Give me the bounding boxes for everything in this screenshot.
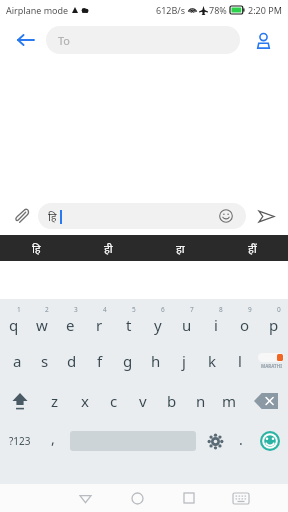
staticText: 2:20 PM [248, 4, 282, 16]
button[interactable]: 2 [28, 303, 56, 341]
button[interactable]: 6 [143, 303, 172, 341]
button[interactable]: Attach [8, 203, 34, 229]
staticText: i [214, 315, 218, 335]
staticText: 0 [277, 305, 281, 314]
button[interactable]: Hide keyboard [215, 484, 267, 512]
button[interactable]: ?123 [0, 421, 40, 461]
button[interactable]: Contacts [248, 25, 278, 55]
staticText: p [269, 315, 279, 335]
staticText: k [208, 351, 217, 371]
button[interactable]: v [128, 381, 157, 421]
button[interactable]: k [198, 341, 226, 381]
staticText: f [97, 351, 103, 371]
staticText: 9 [248, 305, 252, 314]
button[interactable]: Marathi toggle [254, 341, 288, 381]
staticText: y [154, 315, 162, 335]
staticText: v [139, 391, 147, 411]
staticText: z [51, 391, 59, 411]
staticText: . [239, 430, 243, 449]
button[interactable]: l [226, 341, 254, 381]
button[interactable]: s [31, 341, 58, 381]
staticText: 8 [219, 305, 223, 314]
button[interactable]: हि [0, 235, 72, 261]
staticText: MARATHI [261, 363, 282, 369]
staticText: 1 [17, 305, 21, 314]
button[interactable]: j [170, 341, 198, 381]
staticText: q [9, 315, 19, 335]
staticText: t [126, 315, 132, 335]
button[interactable]: z [40, 381, 70, 421]
button[interactable]: f [86, 341, 114, 381]
button[interactable]: हि [38, 203, 246, 229]
staticText: 2 [45, 305, 49, 314]
staticText: 4 [103, 305, 107, 314]
staticText: x [81, 391, 89, 411]
staticText: ही [104, 241, 113, 256]
button[interactable]: Settings [200, 421, 230, 461]
button[interactable]: h [142, 341, 170, 381]
staticText: हि [48, 209, 57, 224]
staticText: हीं [248, 241, 257, 256]
staticText: 612B/s [156, 4, 185, 16]
staticText: 3 [74, 305, 78, 314]
button[interactable]: c [99, 381, 128, 421]
staticText: n [196, 391, 206, 411]
staticText: b [167, 391, 177, 411]
button[interactable]: Emoji keyboard [252, 421, 288, 461]
staticText: w [36, 315, 48, 335]
button[interactable]: 8 [201, 303, 230, 341]
button[interactable]: , [40, 421, 66, 461]
staticText: 7 [190, 305, 194, 314]
staticText: हि [32, 241, 41, 256]
button[interactable]: Recents [163, 484, 215, 512]
button[interactable]: 5 [114, 303, 143, 341]
staticText: o [240, 315, 250, 335]
staticText: 78% [209, 4, 227, 16]
staticText: To [58, 33, 71, 48]
staticText: h [151, 351, 161, 371]
button[interactable]: b [157, 381, 186, 421]
button[interactable]: Back [59, 484, 111, 512]
button[interactable]: 1 [0, 303, 28, 341]
staticText: u [182, 315, 192, 335]
staticText: हा [176, 241, 185, 256]
button[interactable]: Emoji [216, 206, 236, 226]
button[interactable]: Send [252, 202, 280, 230]
staticText: Airplane mode [6, 4, 69, 16]
button[interactable]: ही [72, 235, 144, 261]
staticText: c [110, 391, 118, 411]
staticText: e [66, 315, 75, 335]
button[interactable]: Shift [0, 381, 40, 421]
button[interactable]: x [70, 381, 99, 421]
button[interactable]: n [186, 381, 215, 421]
button[interactable]: 0 [259, 303, 288, 341]
staticText: 5 [132, 305, 136, 314]
button[interactable]: Home [111, 484, 163, 512]
button[interactable]: Backspace [244, 381, 288, 421]
button[interactable]: हीं [216, 235, 288, 261]
staticText: r [96, 315, 103, 335]
staticText: ?123 [9, 434, 31, 448]
button[interactable]: . [230, 421, 252, 461]
button[interactable]: Back [10, 25, 40, 55]
button[interactable]: 3 [56, 303, 85, 341]
staticText: g [123, 351, 133, 371]
staticText: 6 [161, 305, 165, 314]
button[interactable]: 7 [172, 303, 201, 341]
button[interactable]: हा [144, 235, 216, 261]
button[interactable]: a [4, 341, 31, 381]
button[interactable]: 4 [85, 303, 114, 341]
button[interactable]: g [114, 341, 142, 381]
staticText: a [13, 351, 22, 371]
staticText: l [238, 351, 242, 371]
staticText: j [182, 351, 186, 371]
staticText: m [222, 391, 237, 411]
button[interactable]: d [58, 341, 86, 381]
staticText: , [51, 429, 55, 448]
button[interactable]: To [46, 26, 240, 54]
staticText: d [67, 351, 77, 371]
button[interactable]: m [215, 381, 244, 421]
staticText: s [41, 351, 49, 371]
button[interactable]: 9 [230, 303, 259, 341]
